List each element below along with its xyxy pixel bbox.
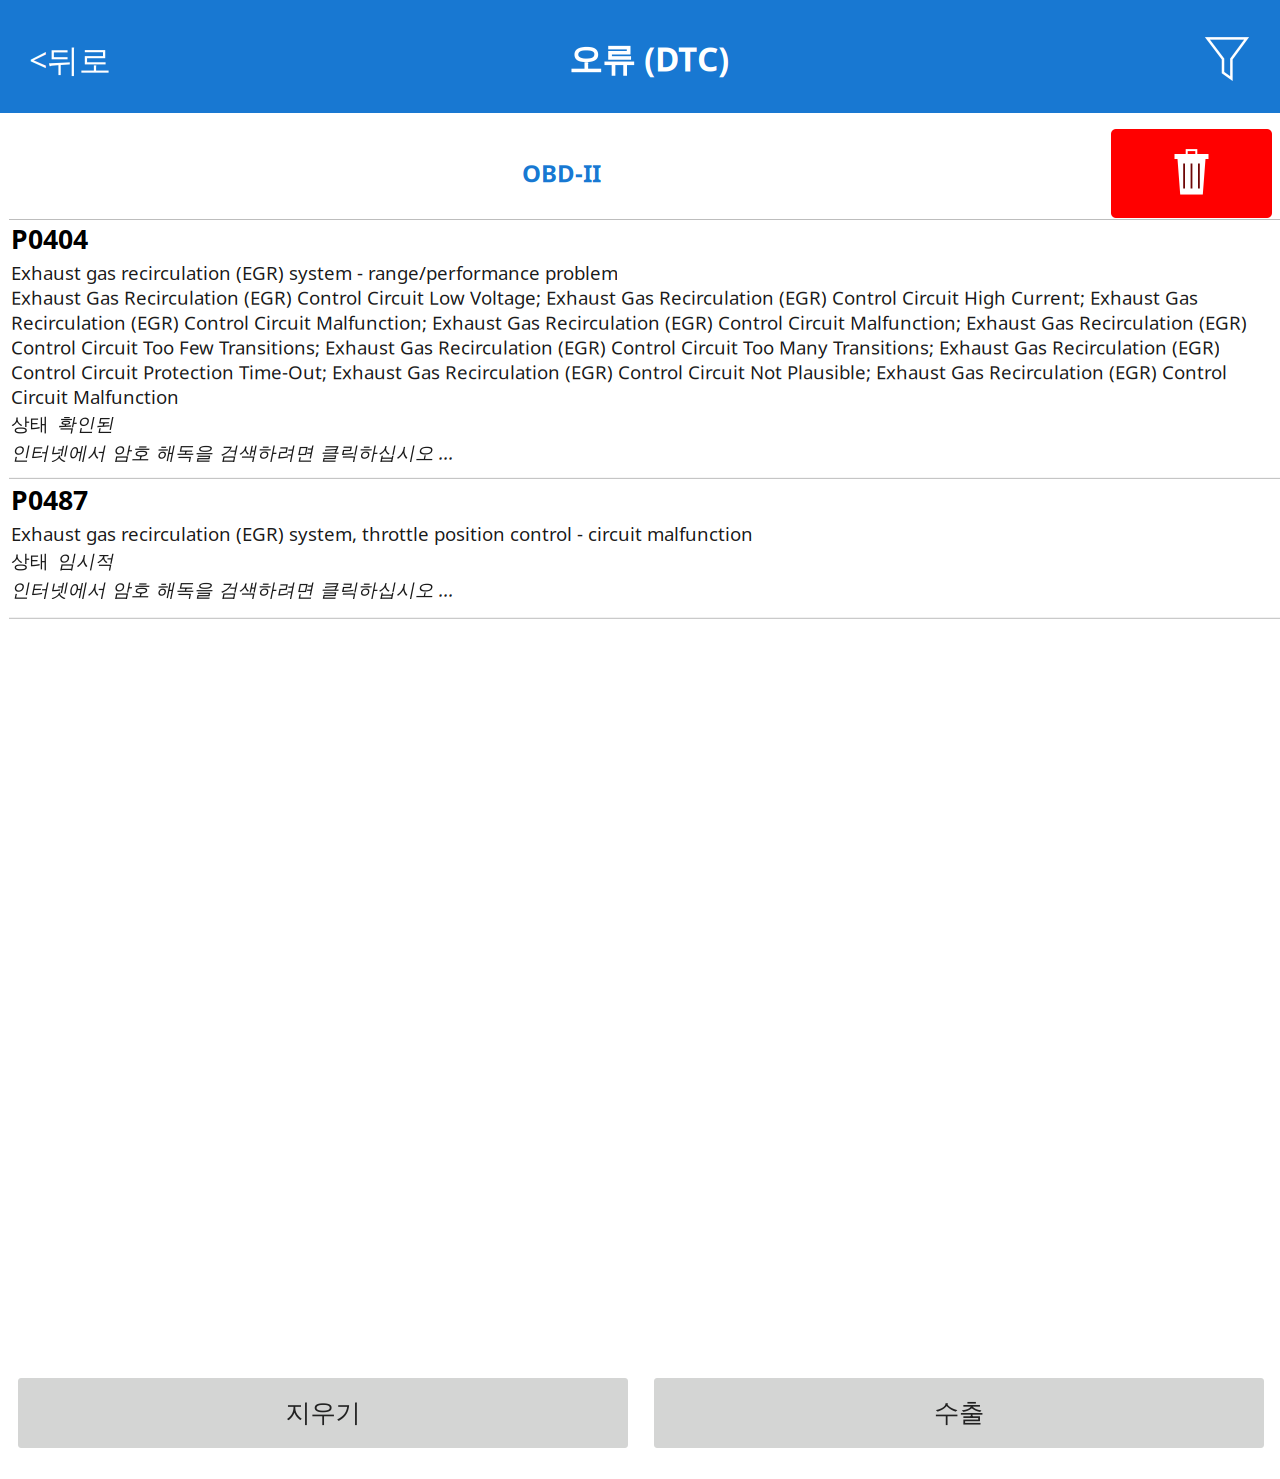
staticText: 임시적 bbox=[57, 550, 114, 573]
staticText: P0404 bbox=[11, 221, 88, 256]
button[interactable]: 수출 bbox=[654, 1378, 1264, 1448]
staticText: Exhaust gas recirculation (EGR) system, … bbox=[11, 521, 753, 546]
staticText: P0487 bbox=[11, 482, 88, 517]
button[interactable]: Filter bbox=[1184, 0, 1280, 113]
staticText: OBD-II bbox=[522, 157, 601, 189]
staticText: 지우기 bbox=[285, 1397, 360, 1428]
button[interactable]: <뒤로 bbox=[0, 10, 131, 103]
staticText: 인터넷에서 암호 해독을 검색하려면 클릭하십시오 ... bbox=[11, 440, 454, 465]
staticText: <뒤로 bbox=[29, 38, 111, 81]
staticText: 상태 bbox=[11, 413, 49, 436]
button[interactable]: P0404 bbox=[0, 220, 1280, 478]
button[interactable]: 지우기 bbox=[18, 1378, 628, 1448]
staticText: 인터넷에서 암호 해독을 검색하려면 클릭하십시오 ... bbox=[11, 577, 454, 602]
button[interactable]: P0487 bbox=[0, 479, 1280, 618]
staticText: Exhaust gas recirculation (EGR) system -… bbox=[11, 260, 1247, 409]
button[interactable]: Delete all codes bbox=[1111, 129, 1272, 218]
staticText: 상태 bbox=[11, 550, 49, 573]
staticText: 확인된 bbox=[57, 413, 114, 436]
staticText: 수출 bbox=[934, 1397, 984, 1428]
staticText: 오류 (DTC) bbox=[569, 36, 729, 81]
